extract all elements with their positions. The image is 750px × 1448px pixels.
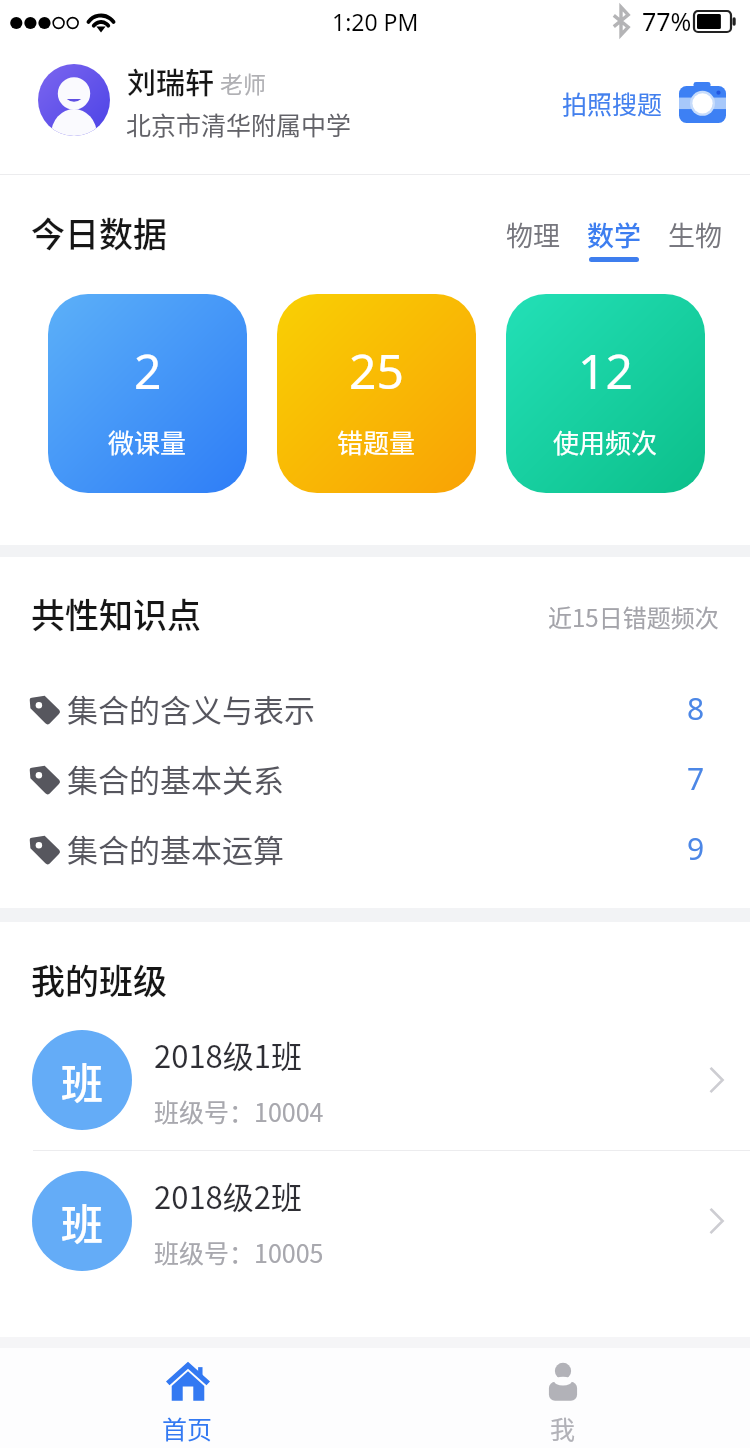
staticText: 使用频次 <box>553 423 658 461</box>
staticText: 今日数据 <box>31 208 167 257</box>
staticText: 生物 <box>668 215 722 254</box>
other: Photo search <box>679 82 726 123</box>
staticText: 微课量 <box>108 423 187 461</box>
button[interactable]: 拍照搜题 <box>562 82 726 123</box>
button[interactable]: 12 <box>506 294 705 493</box>
staticText: 12 <box>578 338 633 403</box>
staticText: 物理 <box>506 215 560 254</box>
button[interactable]: 物理 <box>506 215 560 262</box>
staticText: 9 <box>687 828 705 869</box>
staticText: 首页 <box>162 1410 213 1446</box>
staticText: 我的班级 <box>31 955 167 1004</box>
staticText: 2018级1班 <box>154 1032 303 1077</box>
staticText: 8 <box>687 688 705 729</box>
staticText: 班级号：10004 <box>154 1093 324 1129</box>
staticText: 我 <box>550 1410 576 1446</box>
button[interactable]: 集合的基本运算 <box>0 813 750 883</box>
staticText: 2018级2班 <box>154 1173 303 1218</box>
staticText: 班 <box>61 1050 104 1111</box>
staticText: 集合的含义与表示 <box>67 686 315 731</box>
staticText: 25 <box>349 338 404 403</box>
button[interactable]: 班 <box>0 1151 750 1291</box>
staticText: 错题量 <box>337 423 416 461</box>
button[interactable]: 集合的基本关系 <box>0 743 750 813</box>
staticText: 数学 <box>587 215 641 254</box>
staticText: 近15日错题频次 <box>548 599 719 634</box>
button[interactable]: 2 <box>48 294 247 493</box>
staticText: 7 <box>687 758 705 799</box>
button[interactable]: 数学 <box>587 215 641 262</box>
staticText: 班 <box>61 1191 104 1252</box>
staticText: 老师 <box>220 66 266 99</box>
button[interactable]: 我 <box>375 1348 750 1448</box>
staticText: 1:20 PM <box>332 6 419 37</box>
button[interactable]: 生物 <box>668 215 722 262</box>
button[interactable]: 25 <box>277 294 476 493</box>
staticText: 刘瑞轩 <box>127 60 215 102</box>
button[interactable]: 班 <box>0 1010 750 1150</box>
staticText: 集合的基本关系 <box>67 756 284 801</box>
staticText: 班级号：10005 <box>154 1234 324 1270</box>
staticText: 共性知识点 <box>31 589 201 638</box>
staticText: 拍照搜题 <box>562 85 663 121</box>
staticText: 北京市清华附属中学 <box>126 106 352 142</box>
button[interactable]: 首页 <box>0 1348 375 1448</box>
button[interactable]: 集合的含义与表示 <box>0 673 750 743</box>
staticText: 集合的基本运算 <box>67 826 284 871</box>
staticText: 77% <box>642 4 692 38</box>
staticText: 2 <box>134 338 162 403</box>
